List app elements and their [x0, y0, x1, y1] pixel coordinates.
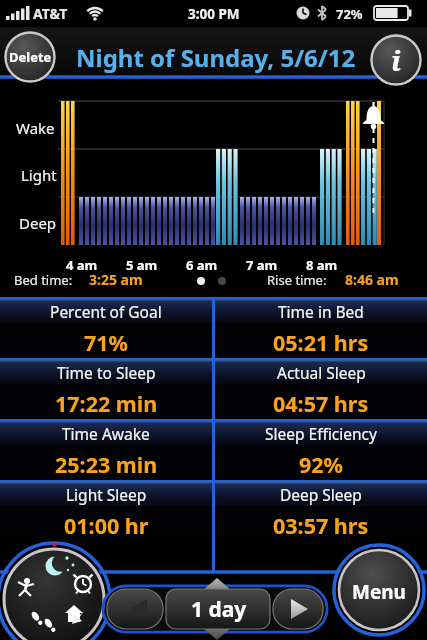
- button[interactable]: [104, 587, 164, 631]
- staticText: Night of Sunday, 5/6/12: [76, 41, 356, 74]
- staticText: Rise time:: [267, 271, 327, 289]
- button[interactable]: [272, 587, 326, 631]
- button[interactable]: Light Sleep: [0, 482, 212, 541]
- staticText: Light: [21, 165, 57, 185]
- button[interactable]: Time in Bed: [215, 299, 427, 358]
- button[interactable]: Delete: [4, 31, 56, 83]
- staticText: 25:23 min: [55, 450, 158, 479]
- staticText: 8 am: [306, 256, 338, 274]
- staticText: AT&T: [33, 4, 68, 23]
- staticText: 17:22 min: [55, 389, 158, 418]
- button[interactable]: Actual Sleep: [215, 360, 427, 419]
- button[interactable]: Deep Sleep: [215, 482, 427, 541]
- staticText: Actual Sleep: [277, 362, 366, 383]
- staticText: Deep Sleep: [280, 484, 362, 505]
- staticText: 71%: [84, 328, 128, 357]
- staticText: 1 day: [191, 595, 247, 624]
- staticText: 01:00 hr: [64, 511, 149, 540]
- staticText: 03:57 hrs: [273, 511, 369, 540]
- staticText: Delete: [9, 48, 52, 66]
- staticText: 3:25 am: [89, 270, 143, 289]
- staticText: Time Awake: [62, 423, 150, 444]
- staticText: Time to Sleep: [57, 362, 156, 383]
- staticText: Time in Bed: [278, 301, 364, 322]
- button[interactable]: [0, 546, 108, 640]
- staticText: 3:00 PM: [188, 5, 240, 23]
- staticText: Light Sleep: [66, 484, 147, 505]
- staticText: 05:21 hrs: [273, 328, 369, 357]
- staticText: 72%: [336, 5, 363, 23]
- staticText: Menu: [352, 579, 406, 605]
- staticText: Wake: [16, 118, 55, 138]
- button[interactable]: Percent of Goal: [0, 299, 212, 358]
- button[interactable]: [166, 587, 270, 631]
- staticText: 4 am: [66, 256, 98, 274]
- staticText: 92%: [299, 450, 343, 479]
- button[interactable]: [336, 547, 422, 633]
- staticText: 6 am: [186, 256, 218, 274]
- staticText: 5 am: [126, 256, 158, 274]
- button[interactable]: Sleep Efficiency: [215, 421, 427, 480]
- staticText: 7 am: [246, 256, 278, 274]
- staticText: 8:46 am: [345, 270, 399, 289]
- staticText: Bed time:: [14, 271, 73, 289]
- button[interactable]: Time Awake: [0, 421, 212, 480]
- staticText: 04:57 hrs: [273, 389, 369, 418]
- staticText: Percent of Goal: [50, 301, 162, 322]
- staticText: Deep: [19, 213, 57, 233]
- button[interactable]: i: [370, 34, 422, 86]
- staticText: Sleep Efficiency: [265, 423, 377, 444]
- button[interactable]: Time to Sleep: [0, 360, 212, 419]
- staticText: i: [391, 41, 401, 79]
